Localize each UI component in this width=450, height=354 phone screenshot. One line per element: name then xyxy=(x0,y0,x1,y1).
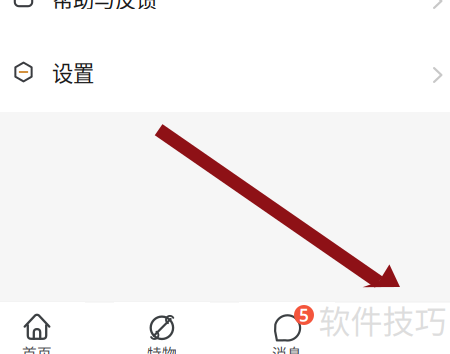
staticText: 软件技巧 xyxy=(318,296,446,343)
button[interactable]: 5 xyxy=(239,302,335,354)
button[interactable]: 帮助与反馈 xyxy=(0,0,450,35)
staticText: 设置 xyxy=(52,57,94,87)
staticText: 首页 xyxy=(22,342,52,354)
button[interactable]: 特物 xyxy=(114,302,210,354)
button[interactable]: 设置 xyxy=(0,34,450,109)
staticText: 帮助与反馈 xyxy=(52,0,157,13)
staticText: 消息 xyxy=(272,342,302,354)
button[interactable]: 首页 xyxy=(0,302,85,354)
staticText: 5 xyxy=(299,303,309,326)
staticText: 特物 xyxy=(147,342,177,354)
